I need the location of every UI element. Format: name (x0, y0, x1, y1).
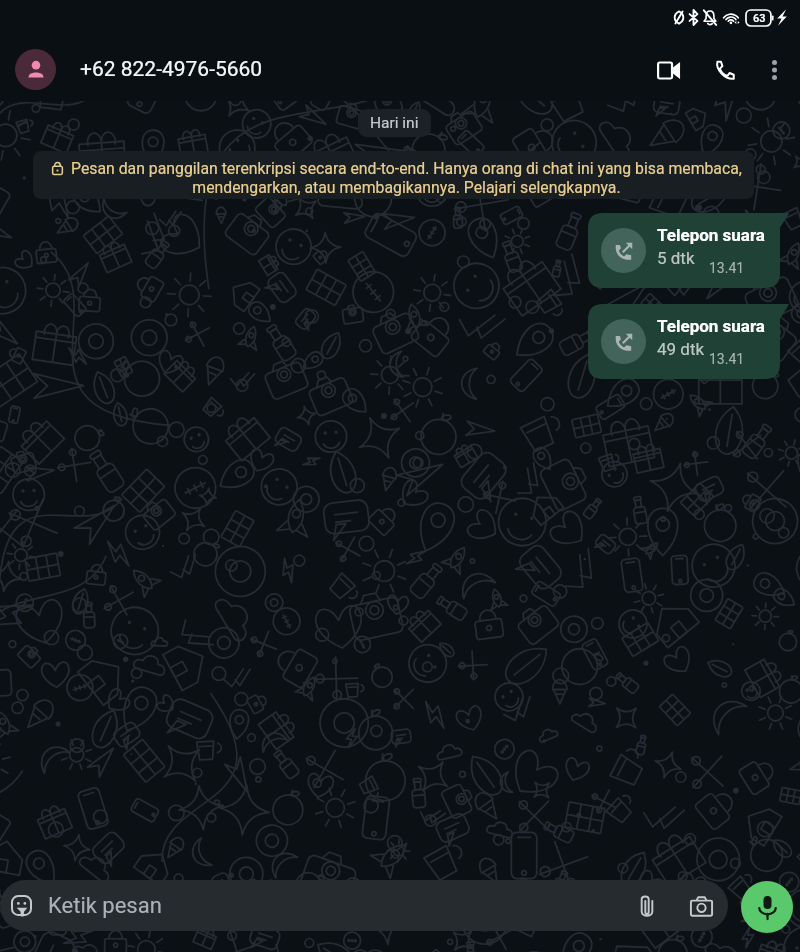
staticText: 13.41 (709, 260, 745, 276)
button[interactable]: Record voice message (741, 881, 793, 933)
staticText: Hari ini (370, 114, 419, 132)
button[interactable]: Video call (646, 47, 692, 93)
staticText: 49 dtk (657, 339, 705, 359)
button[interactable]: Contact avatar (15, 49, 56, 90)
button[interactable]: Telepon suara (588, 304, 789, 379)
button[interactable]: Emoji and stickers (0, 880, 728, 931)
button[interactable]: +62 822-4976-5660 (80, 57, 651, 82)
staticText: +62 822-4976-5660 (80, 57, 263, 82)
button[interactable]: Emoji and stickers (11, 895, 32, 916)
staticText: Pesan dan panggilan terenkripsi secara e… (65, 159, 748, 197)
staticText: Telepon suara (657, 316, 765, 336)
button[interactable]: Attach (630, 889, 664, 923)
staticText: 5 dtk (657, 248, 695, 268)
staticText: 63 (753, 12, 766, 25)
button[interactable]: More options (755, 51, 793, 89)
button[interactable]: Pesan dan panggilan terenkripsi secara e… (33, 151, 754, 199)
button[interactable]: Voice call (701, 47, 747, 93)
staticText: Ketik pesan (48, 893, 162, 919)
button[interactable]: Telepon suara (588, 213, 789, 288)
staticText: Telepon suara (657, 225, 765, 245)
button[interactable]: Hari ini (358, 109, 431, 137)
staticText: 13.41 (709, 351, 745, 367)
button[interactable]: Camera (684, 889, 718, 923)
